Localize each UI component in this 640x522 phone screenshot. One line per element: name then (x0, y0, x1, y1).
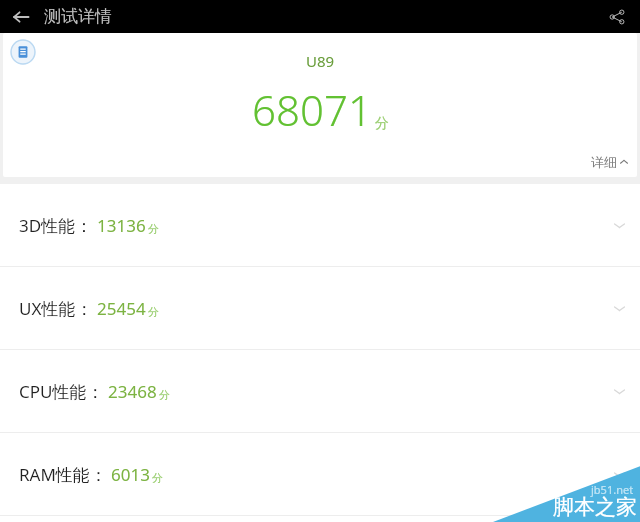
staticText: jb51.net (591, 482, 634, 497)
button[interactable]: 3D性能： (0, 184, 640, 266)
staticText: UX性能： (19, 297, 93, 320)
staticText: 6013 (111, 463, 150, 486)
button[interactable]: Share (602, 2, 632, 32)
staticText: 23468 (108, 380, 157, 403)
button[interactable]: CPU性能： (0, 350, 640, 432)
staticText: RAM性能： (19, 463, 107, 486)
staticText: 68071 (252, 81, 372, 138)
staticText: 3D性能： (19, 214, 93, 237)
staticText: 脚本之家 (553, 494, 637, 520)
button[interactable]: RAM性能： (0, 433, 640, 515)
staticText: 13136 (97, 214, 146, 237)
staticText: 分 (159, 388, 170, 402)
staticText: 分 (148, 305, 159, 319)
button[interactable]: Back (6, 2, 36, 32)
staticText: 分 (148, 222, 159, 236)
staticText: 分 (375, 115, 389, 133)
button[interactable]: U89 (3, 33, 637, 177)
staticText: CPU性能： (19, 380, 104, 403)
button[interactable]: UX性能： (0, 267, 640, 349)
staticText: 详细 (591, 154, 617, 170)
staticText: U89 (306, 51, 335, 71)
button[interactable]: 详细 (591, 154, 629, 170)
staticText: 分 (152, 471, 163, 485)
staticText: 25454 (97, 297, 146, 320)
staticText: 测试详情 (44, 6, 112, 27)
